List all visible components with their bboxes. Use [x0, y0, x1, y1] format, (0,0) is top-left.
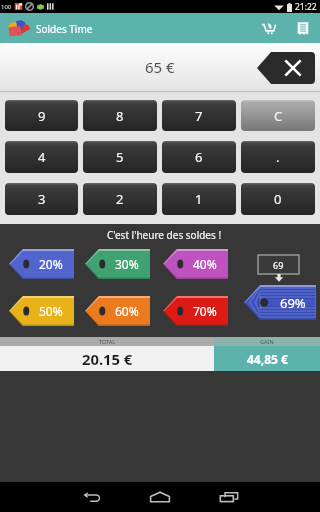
- button[interactable]: .: [241, 141, 315, 173]
- staticText: Soldes Time: [36, 22, 93, 36]
- staticText: 21:22: [295, 1, 317, 13]
- staticText: 2: [116, 190, 124, 208]
- button[interactable]: Effacer: [257, 52, 315, 84]
- staticText: 5: [116, 148, 124, 166]
- staticText: 7: [195, 107, 203, 125]
- button[interactable]: 8: [83, 100, 157, 131]
- staticText: 40%: [193, 256, 217, 272]
- staticText: 100: [1, 3, 12, 11]
- staticText: 20.15 €: [82, 349, 133, 369]
- staticText: 20%: [39, 256, 63, 272]
- staticText: C'est l'heure des soldes !: [107, 228, 222, 242]
- button[interactable]: Panier: [251, 13, 286, 43]
- button[interactable]: 2: [83, 183, 157, 215]
- button[interactable]: 1: [162, 183, 236, 215]
- staticText: 30%: [115, 256, 139, 272]
- button[interactable]: 4: [5, 141, 78, 173]
- button[interactable]: C: [241, 100, 315, 131]
- staticText: 50%: [39, 303, 63, 319]
- staticText: .: [276, 148, 280, 166]
- staticText: 3: [38, 190, 46, 208]
- staticText: 65 €: [145, 57, 175, 77]
- staticText: 9: [38, 107, 46, 125]
- button[interactable]: Recents: [209, 482, 249, 512]
- staticText: 1: [195, 190, 203, 208]
- staticText: 0: [274, 190, 282, 208]
- button[interactable]: 5: [83, 141, 157, 173]
- button[interactable]: 7: [162, 100, 236, 131]
- button[interactable]: Back: [72, 482, 112, 512]
- staticText: 4: [38, 148, 46, 166]
- staticText: 44,85 €: [247, 351, 288, 367]
- button[interactable]: 70%: [163, 296, 228, 326]
- button[interactable]: 40%: [163, 249, 228, 279]
- staticText: TOTAL: [99, 338, 116, 345]
- staticText: 69%: [280, 294, 306, 312]
- button[interactable]: 69%: [244, 285, 316, 320]
- staticText: 70%: [193, 303, 217, 319]
- staticText: 8: [116, 107, 124, 125]
- button[interactable]: 6: [162, 141, 236, 173]
- staticText: 60%: [115, 303, 139, 319]
- button[interactable]: Home: [140, 482, 180, 512]
- button[interactable]: 50%: [9, 296, 74, 326]
- button[interactable]: 9: [5, 100, 78, 131]
- button[interactable]: 20%: [9, 249, 74, 279]
- staticText: 69: [273, 259, 284, 271]
- button[interactable]: 69: [258, 255, 299, 274]
- staticText: C: [274, 107, 283, 125]
- staticText: 6: [195, 148, 203, 166]
- button[interactable]: 3: [5, 183, 78, 215]
- button[interactable]: 0: [241, 183, 315, 215]
- button[interactable]: Liste des achats: [286, 13, 320, 43]
- button[interactable]: 30%: [85, 249, 150, 279]
- button[interactable]: 60%: [85, 296, 150, 326]
- staticText: GAIN: [260, 338, 274, 345]
